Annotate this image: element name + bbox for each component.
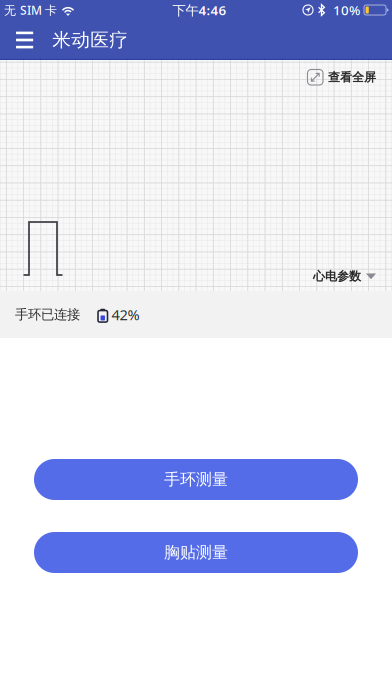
button[interactable]: 心电参数 bbox=[309, 266, 380, 287]
staticText: 42% bbox=[111, 305, 139, 324]
button[interactable]: 手环测量 bbox=[34, 459, 358, 500]
staticText: 心电参数 bbox=[313, 269, 361, 284]
button[interactable]: 查看全屏 bbox=[303, 66, 380, 88]
staticText: 10% bbox=[333, 1, 360, 19]
staticText: 无 SIM 卡 bbox=[4, 2, 57, 18]
staticText: 手环已连接 bbox=[15, 306, 80, 323]
staticText: 查看全屏 bbox=[328, 70, 376, 85]
staticText: 米动医疗 bbox=[52, 28, 128, 51]
staticText: 下午4:46 bbox=[172, 1, 226, 19]
button[interactable]: Menu bbox=[8, 21, 41, 59]
staticText: 胸贴测量 bbox=[164, 543, 228, 562]
button[interactable]: 胸贴测量 bbox=[34, 532, 358, 573]
staticText: 手环测量 bbox=[164, 470, 228, 489]
